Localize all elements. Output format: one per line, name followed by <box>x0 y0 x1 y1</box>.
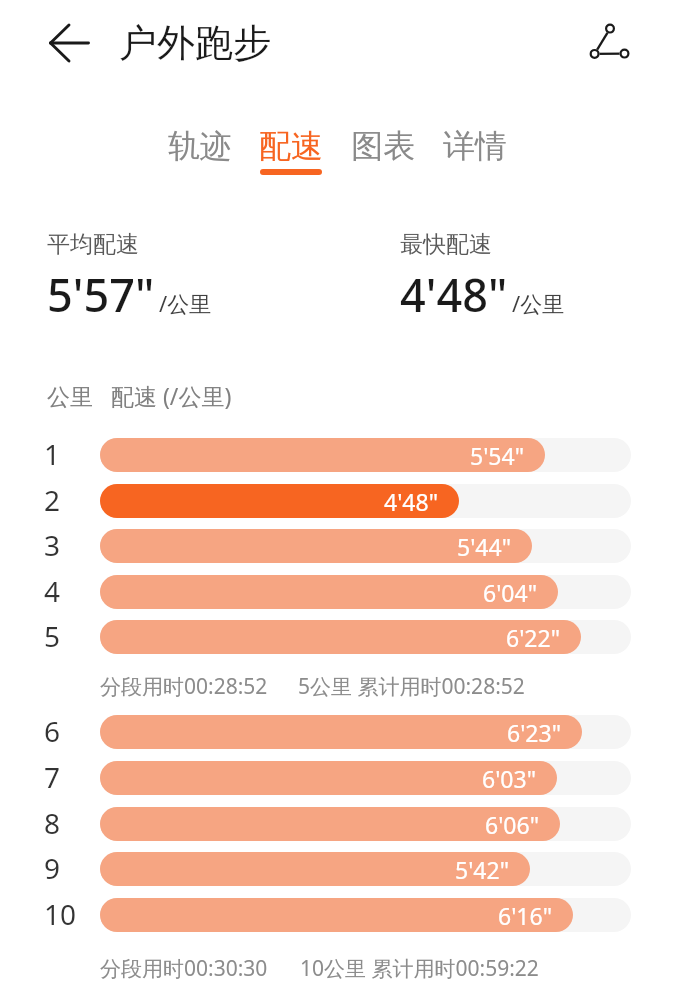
staticText: /公里 <box>159 288 212 318</box>
staticText: 分段用时00:28:52 <box>100 672 268 701</box>
staticText: 10公里 累计用时00:59:22 <box>300 954 539 983</box>
staticText: 6'22" <box>506 622 561 653</box>
staticText: 10 <box>44 895 77 933</box>
staticText: 6'04" <box>483 577 538 608</box>
staticText: 户外跑步 <box>119 19 271 67</box>
staticText: 5 <box>44 617 61 655</box>
staticText: 分段用时00:30:30 <box>100 954 268 983</box>
staticText: 4 <box>44 572 61 610</box>
staticText: 平均配速 <box>47 230 139 259</box>
staticText: 8 <box>44 804 61 842</box>
staticText: 4'48" <box>400 264 508 325</box>
staticText: 5公里 累计用时00:28:52 <box>298 672 525 701</box>
staticText: 5'44" <box>457 531 512 562</box>
staticText: 2 <box>44 481 61 519</box>
button[interactable] <box>43 16 96 69</box>
button[interactable]: 配速 <box>259 126 323 175</box>
staticText: 详情 <box>443 126 507 166</box>
staticText: 公里 配速 (/公里) <box>47 380 232 411</box>
button[interactable]: 详情 <box>443 126 507 169</box>
button[interactable] <box>574 8 630 64</box>
staticText: 5'57" <box>47 264 155 325</box>
staticText: 6'06" <box>485 809 540 840</box>
staticText: 6'16" <box>498 900 553 931</box>
button[interactable]: 轨迹 <box>168 126 232 169</box>
staticText: /公里 <box>512 288 565 318</box>
staticText: 配速 <box>259 126 323 166</box>
staticText: 4'48" <box>384 486 439 517</box>
staticText: 9 <box>44 849 61 887</box>
staticText: 6'23" <box>507 717 562 748</box>
staticText: 6 <box>44 712 61 750</box>
staticText: 7 <box>44 758 61 796</box>
staticText: 6'03" <box>482 763 537 794</box>
staticText: 5'42" <box>455 854 510 885</box>
staticText: 3 <box>44 526 61 564</box>
staticText: 5'54" <box>470 440 525 471</box>
staticText: 图表 <box>351 126 415 166</box>
button[interactable]: 图表 <box>351 126 415 169</box>
staticText: 最快配速 <box>400 230 492 259</box>
staticText: 轨迹 <box>168 126 232 166</box>
staticText: 1 <box>44 435 61 473</box>
